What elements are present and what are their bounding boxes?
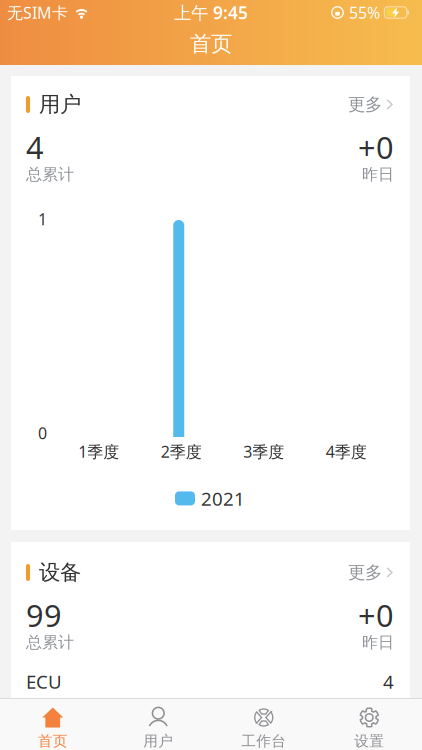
staticText: 2021 [201,486,245,511]
staticText: 4 [383,669,394,694]
button[interactable]: 工作台 [211,698,316,750]
staticText: +0 [358,127,394,167]
staticText: 1 [38,208,47,230]
staticText: +0 [358,595,394,635]
staticText: 4 [26,127,44,167]
staticText: 无SIM卡 [7,2,68,23]
staticText: 工作台 [241,732,286,750]
staticText: 99 [26,595,62,635]
staticText: ECU [26,669,62,694]
button[interactable]: 更多 [348,562,394,583]
button[interactable]: 首页 [0,698,105,750]
staticText: 设置 [354,732,384,750]
staticText: 3季度 [243,441,284,462]
staticText: 昨日 [362,633,394,652]
staticText: 总累计 [26,633,74,652]
staticText: 更多 [348,94,382,115]
staticText: 上午 9:45 [174,1,248,24]
staticText: 昨日 [362,165,394,184]
staticText: 0 [38,422,47,444]
staticText: 首页 [190,31,232,57]
staticText: 55% [349,2,380,23]
staticText: 1季度 [78,441,119,462]
staticText: 2季度 [161,441,202,462]
button[interactable]: 用户 [105,698,211,750]
staticText: 总累计 [26,165,74,184]
button[interactable]: 更多 [348,94,394,115]
staticText: 用户 [143,732,173,750]
staticText: 设备 [39,559,81,586]
staticText: 首页 [38,732,68,750]
staticText: 4季度 [326,441,367,462]
staticText: 更多 [348,562,382,583]
button[interactable]: 设置 [316,698,422,750]
staticText: 用户 [39,91,81,118]
